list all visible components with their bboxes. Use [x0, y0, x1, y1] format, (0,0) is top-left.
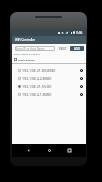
button[interactable]: Back [24, 146, 33, 155]
staticText: 192.168.31.80:8080 [22, 68, 56, 73]
button[interactable]: RESET [57, 46, 68, 51]
staticText: 192.168.4.1:8080 [22, 92, 52, 97]
button[interactable]: Delete device [79, 84, 83, 88]
button[interactable]: ADD [70, 46, 84, 51]
button[interactable]: 192.168.31.55:80 [12, 82, 86, 90]
button[interactable]: Delete device [79, 92, 83, 96]
staticText: 9:56 [76, 31, 83, 35]
staticText: Select Device & Connect [14, 53, 40, 56]
button[interactable]: 192.168.4.1:8080 [12, 90, 86, 98]
button[interactable]: 192.168.4.2:8080 [12, 74, 86, 82]
button[interactable]: Delete device [79, 76, 83, 80]
staticText: WiFi Controller [15, 38, 36, 42]
staticText: RESET [59, 47, 67, 51]
button[interactable]: Delete device [79, 68, 83, 72]
button[interactable]: Enter IP or Host Name [15, 46, 55, 51]
staticText: Saved Devices [18, 58, 35, 61]
staticText: 192.168.4.2:8080 [22, 76, 52, 81]
staticText: ADD [74, 47, 81, 51]
staticText: 192.168.31.55:80 [22, 84, 52, 89]
staticText: Enter IP or Host Name [16, 47, 45, 51]
button[interactable]: Recents [65, 146, 74, 155]
button[interactable]: 192.168.31.80:8080 [12, 66, 86, 74]
button[interactable]: Home [45, 146, 54, 155]
